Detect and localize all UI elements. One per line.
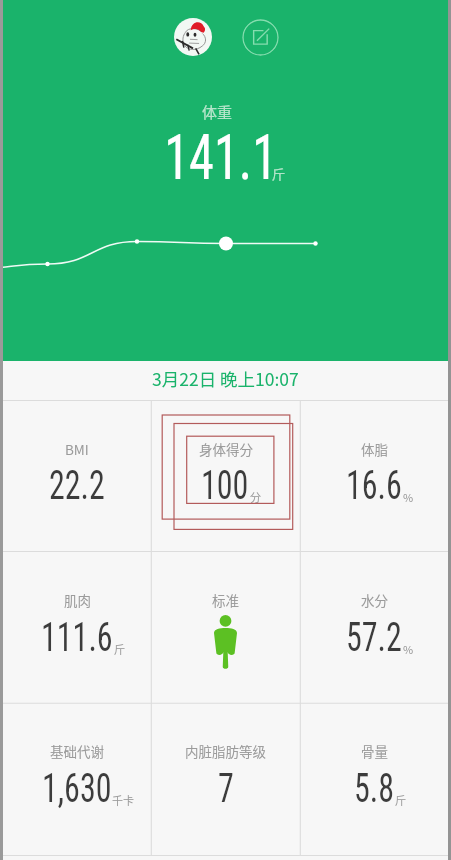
staticText: 111.6 [41,614,113,661]
button[interactable]: 内脏脂肪等级 [151,703,300,855]
staticText: % [403,489,414,505]
staticText: 千卡 [112,792,134,808]
staticText: 标准 [212,590,239,610]
staticText: 100 [201,462,249,509]
button[interactable]: 标准 [151,552,300,704]
button[interactable]: Edit weight record [242,19,279,56]
staticText: % [403,641,414,657]
staticText: 16.6 [346,462,402,509]
staticText: 内脏脂肪等级 [185,741,266,761]
staticText: 肌肉 [64,590,91,610]
staticText: 斤 [395,792,406,808]
button[interactable]: 3月22日 晚上10:07 [0,359,451,398]
button[interactable]: 身体得分 [151,401,300,552]
staticText: 基础代谢 [50,741,104,761]
button[interactable]: 基础代谢 [3,703,151,855]
staticText: 体重 [202,101,233,123]
button[interactable]: 水分 [300,552,449,704]
staticText: BMI [65,439,89,459]
button[interactable]: BMI [3,401,151,552]
staticText: 5.8 [354,765,395,812]
staticText: 水分 [361,590,388,610]
button[interactable]: Profile avatar [174,18,212,56]
button[interactable]: 肌肉 [3,552,151,704]
staticText: 斤 [272,164,286,183]
staticText: 斤 [114,641,125,657]
staticText: 57.2 [346,614,402,661]
staticText: 分 [250,489,261,505]
staticText: 体脂 [361,439,388,459]
button[interactable]: 骨量 [300,703,449,855]
staticText: 骨量 [361,741,388,761]
staticText: 22.2 [49,462,105,509]
staticText: 7 [218,765,234,812]
staticText: 3月22日 晚上10:07 [152,366,299,391]
staticText: 身体得分 [199,439,253,459]
button[interactable]: 体脂 [300,401,449,552]
staticText: 141.1 [164,121,278,195]
staticText: 1,630 [42,765,112,812]
